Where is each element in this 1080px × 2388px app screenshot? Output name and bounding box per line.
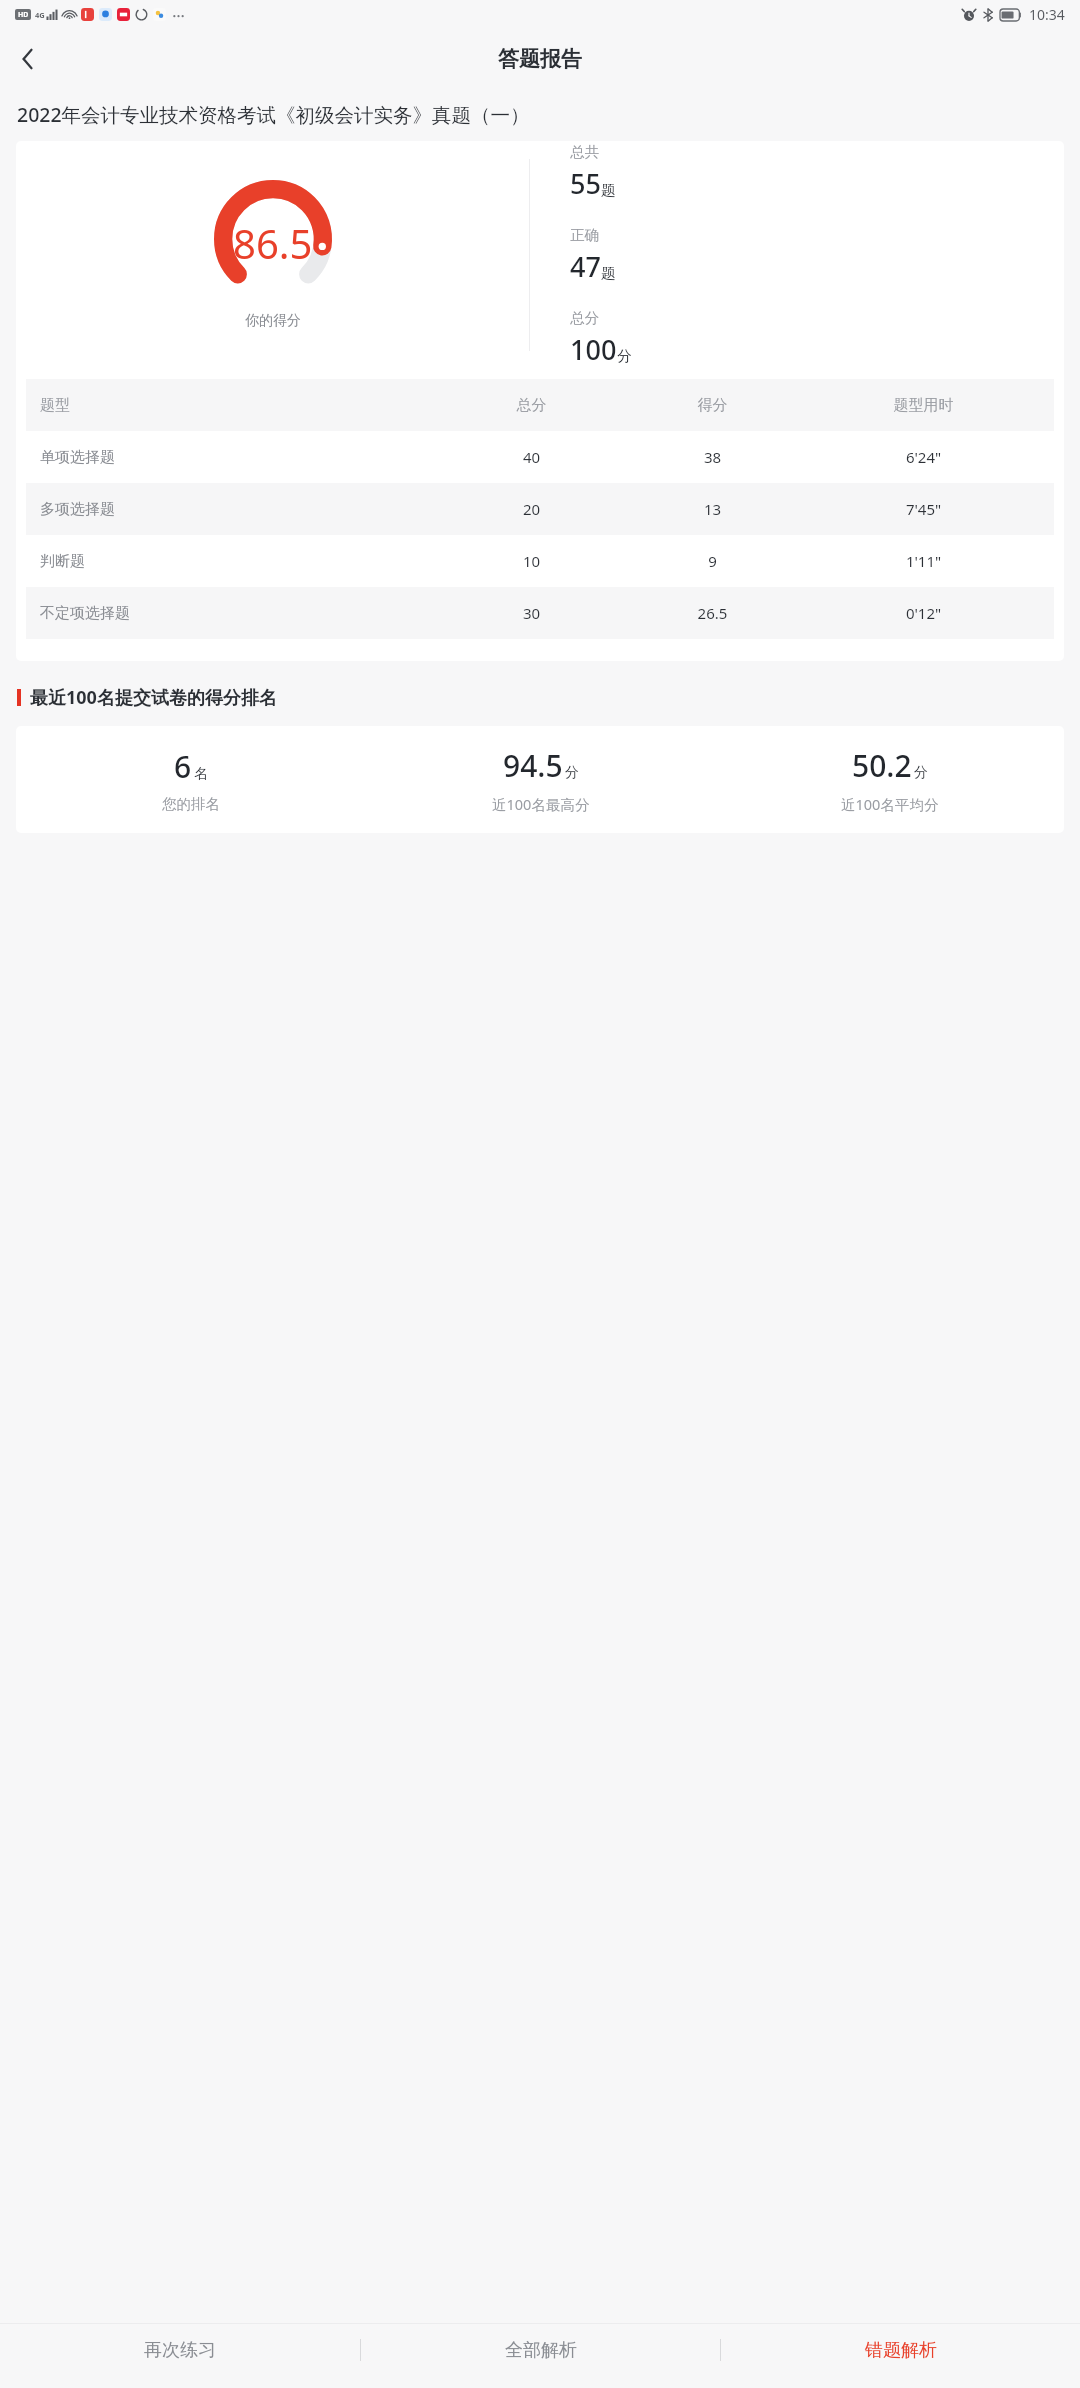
- staticText: 判断题: [40, 552, 441, 571]
- staticText: 40: [441, 447, 622, 467]
- staticText: 分: [565, 764, 579, 782]
- staticText: 总共: [570, 143, 599, 161]
- staticText: 94.5: [503, 745, 563, 786]
- button[interactable]: 再次练习: [0, 2324, 360, 2376]
- staticText: HD: [18, 10, 29, 20]
- staticText: 多项选择题: [40, 500, 441, 519]
- button[interactable]: 返回: [4, 35, 52, 83]
- staticText: 全部解析: [505, 2339, 577, 2362]
- staticText: 最近100名提交试卷的得分排名: [30, 685, 277, 710]
- staticText: 分: [617, 347, 632, 365]
- staticText: 7'45": [803, 499, 1044, 519]
- staticText: 9: [622, 551, 803, 571]
- staticText: 你的得分: [245, 312, 301, 330]
- staticText: 您的排名: [162, 795, 220, 813]
- button[interactable]: 错题解析: [721, 2324, 1080, 2376]
- staticText: 47: [570, 248, 601, 285]
- staticText: 30: [441, 603, 622, 623]
- staticText: 4G: [35, 10, 45, 20]
- staticText: 0'12": [803, 603, 1044, 623]
- staticText: 正确: [570, 226, 599, 244]
- staticText: 答题报告: [498, 46, 582, 72]
- staticText: 近100名平均分: [841, 794, 939, 814]
- staticText: 题: [601, 181, 616, 199]
- button[interactable]: 全部解析: [361, 2324, 720, 2376]
- staticText: 题: [601, 264, 616, 282]
- staticText: 100: [570, 331, 617, 368]
- staticText: 得分: [622, 396, 803, 415]
- staticText: 1'11": [803, 551, 1044, 571]
- staticText: 10: [441, 551, 622, 571]
- staticText: 86.5: [233, 216, 313, 270]
- staticText: 6'24": [803, 447, 1044, 467]
- staticText: 单项选择题: [40, 448, 441, 467]
- staticText: 分: [914, 764, 928, 782]
- staticText: 26.5: [622, 603, 803, 623]
- staticText: 总分: [441, 396, 622, 415]
- staticText: 名: [194, 765, 208, 783]
- staticText: 总分: [570, 309, 599, 327]
- staticText: 题型用时: [803, 396, 1044, 415]
- staticText: 55: [570, 165, 601, 202]
- staticText: 错题解析: [865, 2339, 937, 2362]
- staticText: 38: [622, 447, 803, 467]
- staticText: 近100名最高分: [492, 794, 590, 814]
- staticText: 题型: [40, 396, 441, 415]
- staticText: 2022年会计专业技术资格考试《初级会计实务》真题（一）: [17, 101, 1060, 128]
- staticText: 10:34: [1029, 5, 1065, 24]
- staticText: 6: [174, 746, 192, 787]
- staticText: 不定项选择题: [40, 604, 441, 623]
- staticText: 20: [441, 499, 622, 519]
- staticText: 50.2: [852, 745, 912, 786]
- staticText: 再次练习: [144, 2339, 216, 2362]
- staticText: 13: [622, 499, 803, 519]
